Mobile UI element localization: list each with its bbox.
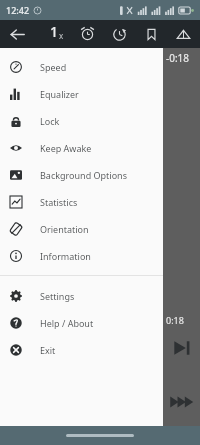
button[interactable]: Help / About <box>0 309 163 336</box>
staticText: 12:42 <box>6 4 30 16</box>
staticText: 0:18 <box>166 314 184 326</box>
button[interactable]: Fast forward <box>168 388 196 416</box>
button[interactable]: Speed <box>0 53 163 80</box>
staticText: x <box>59 30 64 41</box>
staticText: Information <box>40 250 91 262</box>
button[interactable]: Exit <box>0 336 163 363</box>
button[interactable]: Statistics <box>0 188 163 215</box>
staticText: Help / About <box>40 317 94 329</box>
button[interactable]: Back <box>0 20 34 48</box>
staticText: Settings <box>40 290 75 302</box>
staticText: Keep Awake <box>40 142 92 154</box>
button[interactable]: Bookmarks <box>140 23 162 45</box>
button[interactable]: Settings <box>0 282 163 309</box>
staticText: Exit <box>40 344 56 356</box>
button[interactable]: Information <box>0 242 163 269</box>
button[interactable]: Lock <box>0 107 163 134</box>
staticText: -0:18 <box>166 51 190 65</box>
staticText: 1 <box>50 22 59 41</box>
button[interactable]: Sleep timer <box>76 23 98 45</box>
staticText: Speed <box>40 61 67 73</box>
staticText: Orientation <box>40 223 89 235</box>
staticText: Equalizer <box>40 88 79 100</box>
button[interactable]: Orientation <box>0 215 163 242</box>
button[interactable]: Background Options <box>0 161 163 188</box>
button[interactable]: 1 <box>50 20 64 48</box>
button[interactable]: Keep Awake <box>0 134 163 161</box>
staticText: Lock <box>40 115 60 127</box>
staticText: Statistics <box>40 196 78 208</box>
button[interactable]: Equalizer <box>0 80 163 107</box>
staticText: Background Options <box>40 169 127 181</box>
button[interactable]: Next <box>170 336 194 360</box>
button[interactable]: Chapters <box>172 23 194 45</box>
button[interactable]: History <box>108 23 130 45</box>
